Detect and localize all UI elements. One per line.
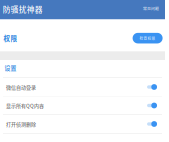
button[interactable]: 显示所有QQ内容 <box>0 96 165 115</box>
button[interactable]: 打开侦测删除 <box>0 115 165 133</box>
staticText: 设置 <box>4 63 16 72</box>
button[interactable]: 微信自动登录 <box>0 78 165 96</box>
button[interactable]: 检查权限 <box>133 33 163 43</box>
staticText: 打开侦测删除 <box>6 120 36 128</box>
staticText: 检查权限 <box>140 35 156 41</box>
staticText: 权限 <box>4 33 18 43</box>
staticText: 微信自动登录 <box>6 83 36 91</box>
staticText: 常见问题 <box>143 5 159 11</box>
staticText: 显示所有QQ内容 <box>6 102 44 109</box>
button[interactable]: 常见问题 <box>140 4 161 15</box>
staticText: 防骚扰神器 <box>3 4 43 15</box>
